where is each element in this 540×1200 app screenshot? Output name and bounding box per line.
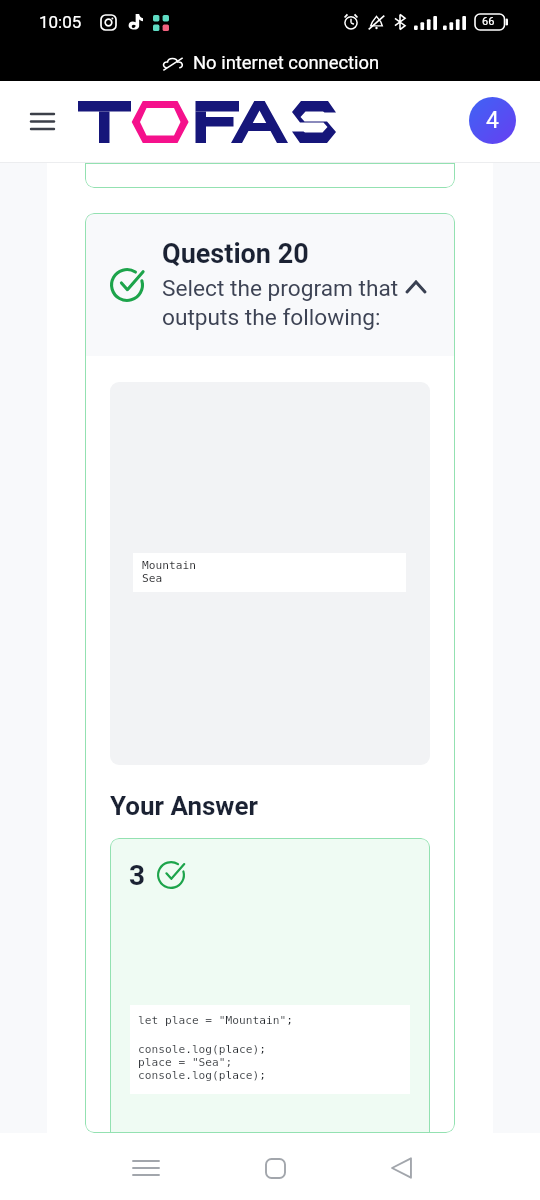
button[interactable]: Collapse [397, 268, 435, 306]
staticText: let place = "Mountain"; [138, 1014, 293, 1027]
staticText: Sea [142, 572, 163, 585]
staticText: Your Answer [110, 791, 258, 821]
button[interactable]: Back [378, 1145, 424, 1191]
button[interactable]: Question 20 [85, 213, 455, 1133]
button[interactable]: Open navigation menu [24, 103, 60, 139]
button[interactable]: Recent apps [123, 1145, 169, 1191]
staticText: console.log(place); [138, 1069, 266, 1082]
staticText: Mountain [142, 559, 196, 572]
staticText: place = "Sea"; [138, 1056, 233, 1069]
staticText: Select the program that outputs the foll… [162, 275, 406, 331]
button[interactable]: Home [252, 1145, 298, 1191]
staticText: No internet connection [193, 52, 380, 74]
button[interactable]: 3 [110, 838, 430, 1133]
staticText: Question 20 [162, 238, 309, 270]
staticText: 3 [129, 859, 146, 892]
staticText: console.log(place); [138, 1043, 266, 1056]
staticText: 4 [486, 107, 499, 134]
button[interactable]: Account, 4 notifications [469, 97, 516, 144]
staticText: 66 [482, 15, 495, 28]
staticText: 10:05 [39, 12, 82, 32]
